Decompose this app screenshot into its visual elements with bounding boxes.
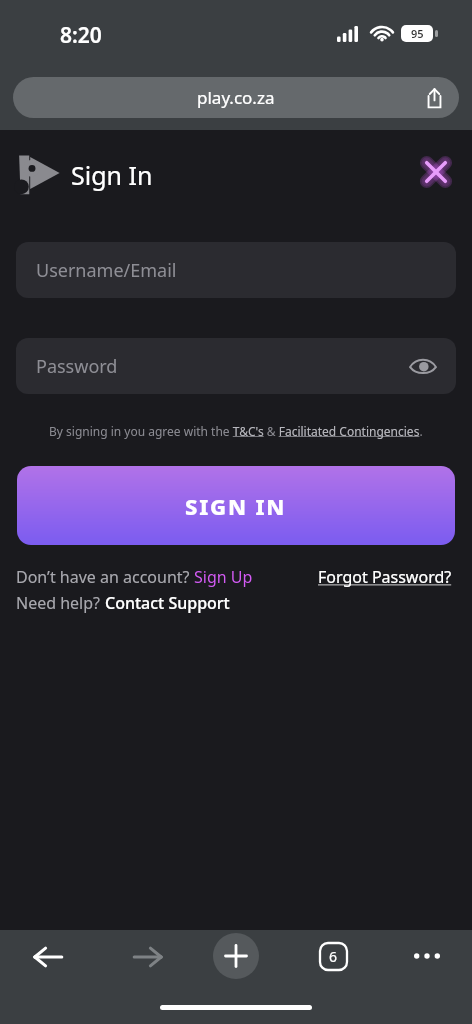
staticText: Forgot Password? [318, 566, 452, 588]
staticText: 8:20 [60, 21, 102, 50]
button[interactable]: Forgot Password? [318, 566, 452, 588]
button[interactable]: SIGN IN [17, 466, 455, 545]
staticText: Need help? [16, 592, 105, 614]
staticText: By signing in you agree with the T&C's &… [49, 423, 423, 439]
staticText: Contact Support [105, 592, 230, 614]
button[interactable]: Close [412, 148, 460, 196]
staticText: Password [36, 354, 118, 379]
button[interactable]: Tabs [309, 933, 357, 979]
staticText: Username/Email [36, 258, 177, 283]
button[interactable]: Password [16, 338, 456, 394]
button[interactable]: New tab [213, 933, 259, 979]
button[interactable]: Forward [112, 933, 184, 981]
button[interactable]: play.co.za [13, 77, 459, 118]
other: Share [426, 88, 443, 108]
staticText: 6 [329, 947, 338, 966]
staticText: Sign In [71, 158, 153, 192]
button[interactable]: Username/Email [16, 242, 456, 298]
staticText: 95 [411, 26, 424, 41]
staticText: SIGN IN [185, 491, 287, 521]
button[interactable]: More [396, 933, 458, 979]
button[interactable]: Show password [401, 344, 445, 388]
staticText: play.co.za [197, 86, 275, 109]
button[interactable]: Contact Support [105, 592, 230, 614]
staticText: Sign Up [194, 566, 253, 588]
button[interactable]: Sign Up [194, 566, 253, 588]
button[interactable]: Back [12, 933, 84, 981]
staticText: Don’t have an account? [16, 566, 194, 588]
